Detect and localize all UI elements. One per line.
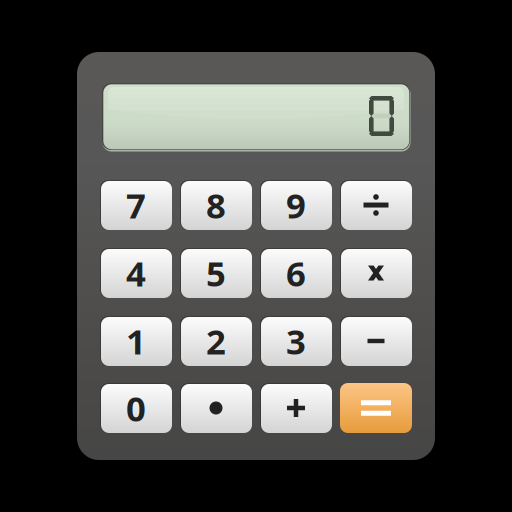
button[interactable]: 3 bbox=[260, 316, 332, 366]
staticText: 3 bbox=[286, 318, 306, 364]
button[interactable]: 5 bbox=[180, 248, 252, 298]
button[interactable]: Divide bbox=[340, 180, 412, 230]
button[interactable]: Equals bbox=[340, 383, 412, 433]
button[interactable]: Multiply bbox=[340, 248, 412, 298]
button[interactable]: 1 bbox=[100, 316, 172, 366]
staticText: 8 bbox=[206, 182, 226, 228]
button[interactable]: 4 bbox=[100, 248, 172, 298]
button[interactable]: 7 bbox=[100, 180, 172, 230]
staticText: 1 bbox=[126, 318, 146, 364]
staticText: 7 bbox=[126, 182, 146, 228]
staticText: 5 bbox=[206, 250, 226, 296]
staticText: 0 bbox=[126, 385, 146, 431]
staticText: 4 bbox=[126, 250, 146, 296]
staticText: 6 bbox=[286, 250, 306, 296]
button[interactable]: 6 bbox=[260, 248, 332, 298]
button[interactable]: Minus bbox=[340, 316, 412, 366]
button[interactable]: 2 bbox=[180, 316, 252, 366]
button[interactable]: 8 bbox=[180, 180, 252, 230]
staticText: 9 bbox=[286, 182, 306, 228]
button[interactable]: Decimal point bbox=[180, 383, 252, 433]
button[interactable]: 0 bbox=[100, 383, 172, 433]
button[interactable]: Plus bbox=[260, 383, 332, 433]
staticText: 2 bbox=[206, 318, 226, 364]
button[interactable]: 9 bbox=[260, 180, 332, 230]
